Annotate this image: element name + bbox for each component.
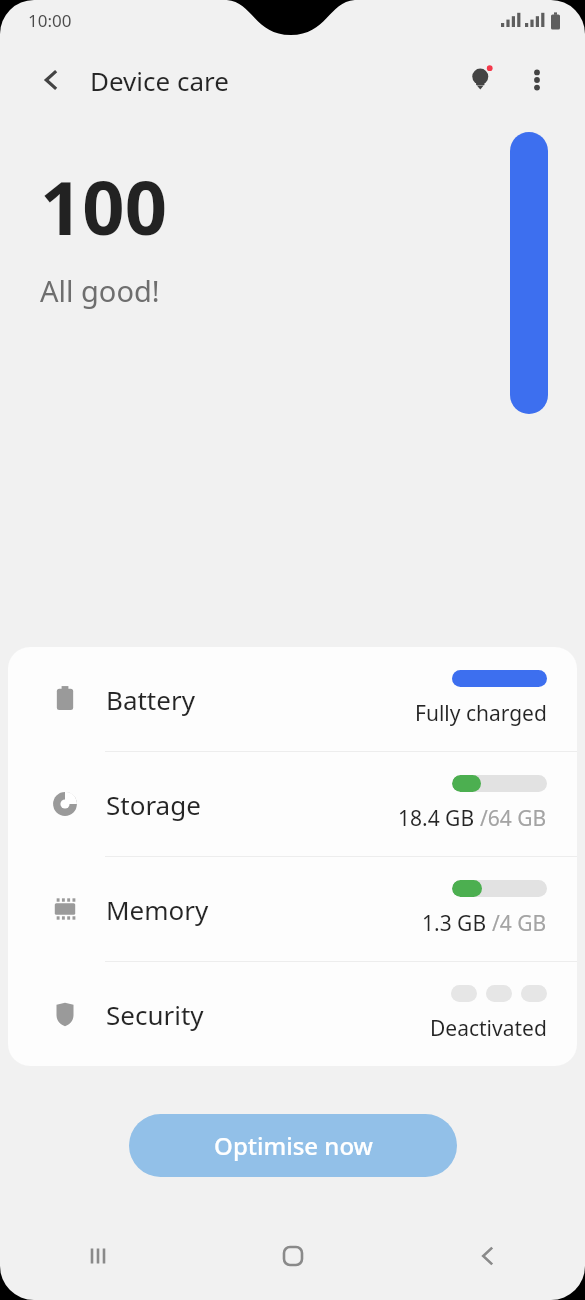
- button[interactable]: Back: [390, 1226, 585, 1286]
- button[interactable]: Memory: [8, 857, 577, 961]
- staticText: Optimise now: [214, 1129, 373, 1162]
- staticText: 100: [40, 156, 167, 257]
- button[interactable]: Recents: [0, 1226, 195, 1286]
- staticText: Battery: [106, 682, 195, 717]
- staticText: /64 GB: [480, 804, 547, 833]
- button[interactable]: More options: [513, 56, 561, 104]
- button[interactable]: Security: [8, 962, 577, 1066]
- button[interactable]: Optimise now: [129, 1114, 457, 1177]
- button[interactable]: Home: [195, 1226, 390, 1286]
- staticText: Device care: [90, 63, 229, 98]
- staticText: Memory: [106, 892, 209, 927]
- button[interactable]: Tips: [459, 56, 507, 104]
- staticText: 18.4 GB: [398, 804, 480, 833]
- staticText: 1.3 GB: [422, 909, 492, 938]
- staticText: Fully charged: [415, 699, 547, 728]
- button[interactable]: Storage: [8, 752, 577, 856]
- staticText: 10:00: [28, 9, 72, 32]
- staticText: All good!: [40, 271, 160, 310]
- staticText: /4 GB: [492, 909, 547, 938]
- button[interactable]: Back: [30, 58, 74, 102]
- staticText: Security: [106, 997, 204, 1032]
- staticText: Storage: [106, 787, 201, 822]
- staticText: Deactivated: [430, 1014, 547, 1043]
- button[interactable]: Battery: [8, 647, 577, 751]
